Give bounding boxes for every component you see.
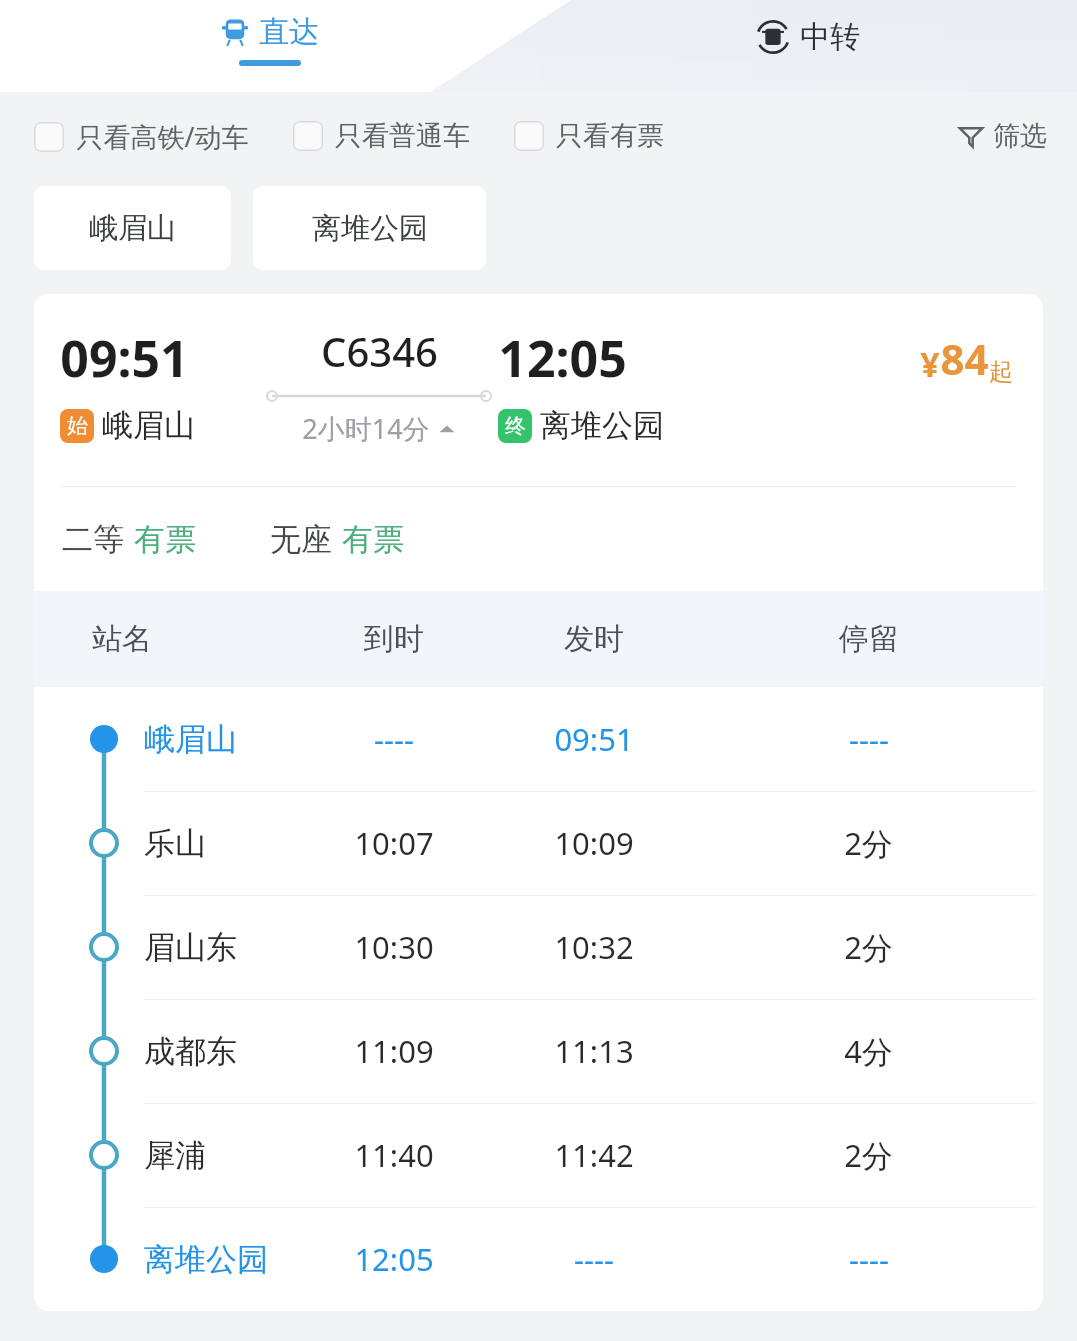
staticText: 停留	[839, 620, 899, 658]
staticText: 12:05	[498, 324, 627, 392]
staticText: 乐山	[144, 824, 206, 863]
staticText: ¥	[920, 341, 940, 387]
staticText: 离堆公园	[144, 1240, 268, 1279]
staticText: C6346	[321, 324, 438, 378]
button[interactable]: 只看普通车	[293, 111, 470, 161]
button[interactable]: 中转	[538, 0, 1077, 92]
staticText: 84	[940, 330, 989, 387]
staticText: 直达	[259, 13, 319, 51]
staticText: 2分	[844, 1134, 893, 1176]
button[interactable]: 离堆公园	[34, 1207, 1043, 1311]
staticText: 站名	[92, 620, 152, 658]
staticText: 有票	[342, 520, 404, 559]
staticText: 09:51	[60, 324, 189, 392]
button[interactable]: 成都东	[34, 999, 1043, 1103]
staticText: 12:05	[354, 1238, 434, 1280]
staticText: 11:09	[354, 1030, 434, 1072]
staticText: ----	[849, 1238, 889, 1280]
staticText: 峨眉山	[89, 210, 176, 247]
button[interactable]: 直达	[0, 0, 538, 92]
staticText: 10:09	[554, 822, 634, 864]
staticText: 到时	[364, 620, 424, 658]
staticText: 10:07	[354, 822, 434, 864]
staticText: 离堆公园	[540, 406, 664, 445]
staticText: ----	[574, 1238, 614, 1280]
button[interactable]: 眉山东	[34, 895, 1043, 999]
staticText: 无座	[270, 520, 332, 559]
button[interactable]: 乐山	[34, 791, 1043, 895]
staticText: 二等	[62, 520, 124, 559]
staticText: 10:32	[554, 926, 634, 968]
staticText: 起	[989, 357, 1013, 387]
staticText: 成都东	[144, 1032, 237, 1071]
staticText: 始	[67, 413, 88, 439]
button[interactable]: 犀浦	[34, 1103, 1043, 1207]
staticText: 4分	[844, 1030, 893, 1072]
staticText: 峨眉山	[144, 720, 237, 759]
staticText: 2分	[844, 926, 893, 968]
staticText: 眉山东	[144, 928, 237, 967]
button[interactable]: 只看高铁/动车	[34, 110, 249, 163]
staticText: ----	[374, 718, 414, 760]
staticText: 只看有票	[556, 119, 664, 153]
button[interactable]: 峨眉山	[34, 687, 1043, 791]
staticText: 10:30	[354, 926, 434, 968]
staticText: 离堆公园	[312, 210, 428, 247]
staticText: 有票	[134, 520, 196, 559]
button[interactable]: 筛选	[953, 111, 1051, 161]
staticText: 2小时14分	[302, 410, 430, 447]
staticText: 峨眉山	[102, 406, 195, 445]
button[interactable]: 只看有票	[514, 111, 664, 161]
button[interactable]: 二等	[62, 520, 196, 559]
staticText: 犀浦	[144, 1136, 206, 1175]
staticText: 筛选	[993, 119, 1047, 153]
staticText: 11:42	[554, 1134, 634, 1176]
button[interactable]: 峨眉山	[34, 186, 231, 270]
staticText: 2分	[844, 822, 893, 864]
staticText: 只看普通车	[335, 119, 470, 153]
staticText: 11:13	[554, 1030, 634, 1072]
staticText: ----	[849, 718, 889, 760]
staticText: 只看高铁/动车	[76, 118, 249, 155]
staticText: 中转	[800, 18, 860, 56]
button[interactable]: 离堆公园	[253, 186, 486, 270]
button[interactable]: 无座	[270, 520, 404, 559]
staticText: 11:40	[354, 1134, 434, 1176]
staticText: 09:51	[554, 718, 634, 760]
staticText: 发时	[564, 620, 624, 658]
staticText: 终	[505, 413, 526, 439]
